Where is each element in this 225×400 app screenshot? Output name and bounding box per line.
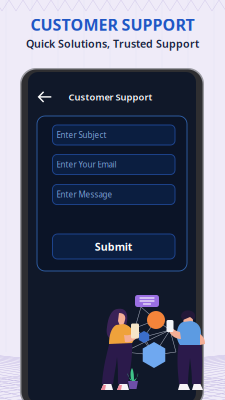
button[interactable]: Enter Message	[52, 184, 175, 204]
button[interactable]: Enter Your Email	[52, 154, 175, 174]
button[interactable]: Back	[37, 90, 52, 103]
staticText: CUSTOMER SUPPORT	[30, 14, 194, 35]
button[interactable]: Enter Subject	[52, 125, 175, 145]
button[interactable]: Submit	[52, 234, 175, 259]
staticText: Enter Your Email	[56, 159, 116, 170]
staticText: Enter Message	[56, 189, 112, 200]
staticText: Customer Support	[68, 91, 152, 103]
staticText: Submit	[95, 239, 133, 254]
staticText: Enter Subject	[56, 130, 106, 140]
staticText: Quick Solutions, Trusted Support	[26, 36, 199, 51]
